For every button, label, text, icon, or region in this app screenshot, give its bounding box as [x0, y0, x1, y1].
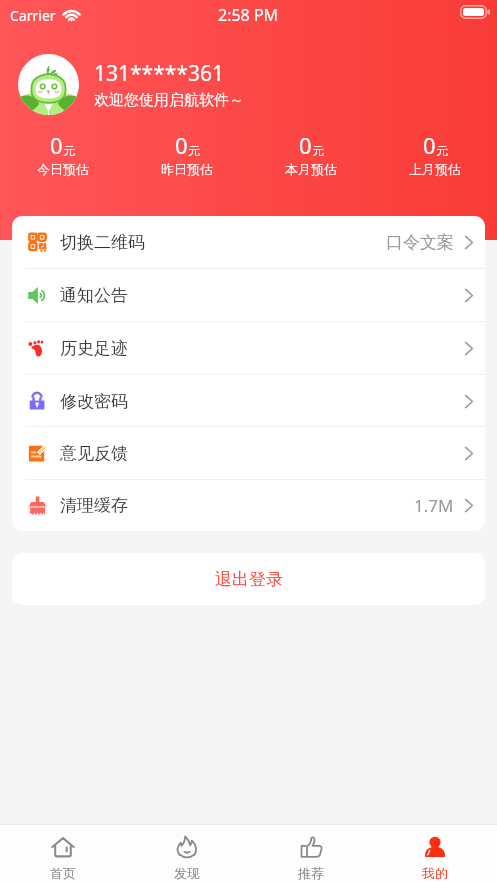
button[interactable]: 切换二维码 [12, 216, 485, 269]
staticText: 历史足迹 [60, 338, 128, 359]
staticText: 0 [299, 130, 312, 160]
staticText: 切换二维码 [60, 232, 145, 253]
staticText: 0 [423, 130, 436, 160]
button[interactable]: 意见反馈 [12, 427, 485, 480]
staticText: 本月预估 [285, 161, 337, 177]
staticText: 清理缓存 [60, 495, 128, 516]
button[interactable]: 首页 [0, 825, 125, 883]
staticText: 我的 [422, 865, 448, 881]
staticText: 意见反馈 [60, 443, 128, 464]
staticText: 退出登录 [215, 569, 283, 590]
staticText: 发现 [174, 865, 200, 881]
staticText: 元 [63, 143, 75, 158]
button[interactable]: 通知公告 [12, 269, 485, 322]
staticText: 元 [188, 143, 200, 158]
button[interactable]: 修改密码 [12, 375, 485, 427]
staticText: 推荐 [298, 865, 324, 881]
staticText: 0 [175, 130, 188, 160]
button[interactable]: 我的 [373, 825, 497, 883]
staticText: 131*****361 [94, 59, 224, 88]
button[interactable]: 清理缓存 [12, 480, 485, 531]
button[interactable]: 退出登录 [12, 553, 485, 605]
staticText: 口令文案 [386, 232, 454, 253]
staticText: 2:58 PM [218, 4, 279, 26]
staticText: 昨日预估 [161, 161, 213, 177]
button[interactable]: 推荐 [249, 825, 373, 883]
staticText: 今日预估 [37, 161, 89, 177]
staticText: 元 [312, 143, 324, 158]
staticText: 欢迎您使用启航软件～ [94, 91, 244, 110]
staticText: 元 [436, 143, 448, 158]
staticText: 通知公告 [60, 285, 128, 306]
staticText: 首页 [50, 865, 76, 881]
staticText: 1.7M [414, 494, 454, 517]
button[interactable]: 发现 [125, 825, 249, 883]
button[interactable]: 历史足迹 [12, 322, 485, 375]
staticText: Carrier [10, 6, 56, 25]
staticText: 修改密码 [60, 391, 128, 412]
staticText: 上月预估 [409, 161, 461, 177]
staticText: 0 [50, 130, 63, 160]
